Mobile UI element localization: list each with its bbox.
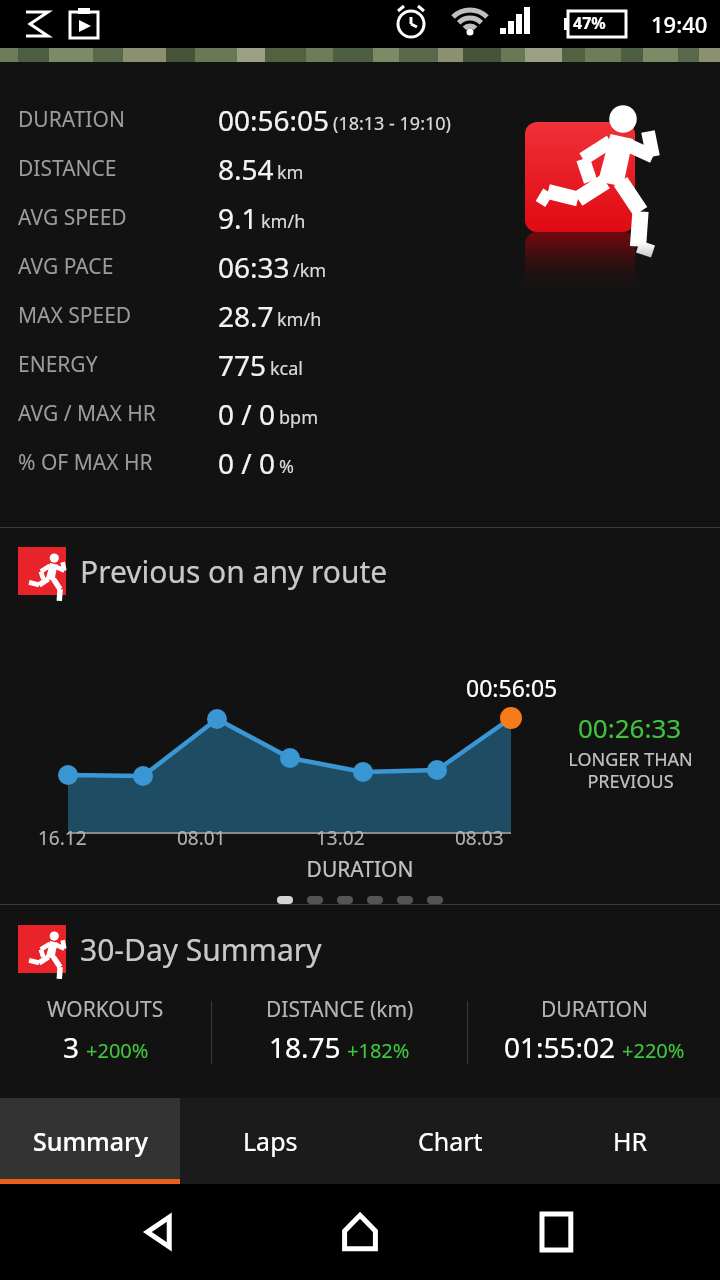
staticText: 08.01 [177,825,226,851]
button[interactable]: DURATION [468,995,720,1070]
staticText: 00:56:05 [466,672,558,703]
staticText: 9.1 [218,199,258,237]
button[interactable] [337,896,353,904]
staticText: bpm [279,405,318,430]
staticText: AVG SPEED [18,203,127,232]
staticText: DISTANCE [18,154,117,183]
staticText: WORKOUTS [47,995,164,1024]
staticText: DISTANCE (km) [266,995,414,1024]
button[interactable]: HR [540,1098,720,1184]
staticText: DURATION [541,995,648,1024]
staticText: Previous on any route [80,551,388,592]
staticText: 00:26:33 [578,710,682,745]
staticText: 3 [63,1028,80,1066]
staticText: 19:40 [651,9,708,39]
staticText: Laps [243,1124,298,1158]
staticText: 01:55:02 [504,1028,616,1066]
staticText: 00:56:05 [218,101,330,139]
staticText: km/h [261,209,306,234]
staticText: kcal [270,356,303,381]
staticText: 47% [573,12,606,34]
staticText: DURATION [0,855,720,884]
button[interactable]: Chart [360,1098,540,1184]
staticText: 0 / 0 [218,395,276,433]
staticText: 16.12 [38,825,87,851]
staticText: HR [613,1124,648,1158]
staticText: 13.02 [316,825,365,851]
staticText: +200% [86,1037,149,1064]
staticText: Summary [33,1124,148,1158]
staticText: % OF MAX HR [18,448,153,477]
staticText: +220% [622,1037,685,1064]
staticText: 0 / 0 [218,444,276,482]
staticText: ENERGY [18,350,98,379]
staticText: km/h [277,307,322,332]
staticText: /km [293,258,327,283]
button[interactable] [397,896,413,904]
button[interactable]: Back [120,1192,200,1272]
button[interactable]: WORKOUTS [0,995,211,1070]
button[interactable]: Home [320,1192,400,1272]
staticText: Chart [418,1124,483,1158]
button[interactable]: DISTANCE (km) [212,995,467,1070]
staticText: 775 [218,346,267,384]
button[interactable] [427,896,443,904]
staticText: MAX SPEED [18,301,132,330]
staticText: % [279,454,294,479]
staticText: 18.75 [269,1028,341,1066]
staticText: +182% [347,1037,410,1064]
staticText: 8.54 [218,150,274,188]
staticText: (18:13 - 19:10) [333,111,451,136]
staticText: AVG PACE [18,252,114,281]
staticText: 06:33 [218,248,290,286]
staticText: AVG / MAX HR [18,399,156,428]
button[interactable]: Laps [180,1098,360,1184]
button[interactable] [367,896,383,904]
staticText: 30-Day Summary [80,929,322,970]
staticText: 28.7 [218,297,274,335]
staticText: DURATION [18,105,125,134]
button[interactable] [277,896,293,904]
button[interactable]: Recent apps [520,1192,600,1272]
button[interactable] [307,896,323,904]
staticText: 08.03 [455,825,504,851]
staticText: km [277,160,304,185]
button[interactable]: Summary [0,1098,180,1184]
staticText: LONGER THAN PREVIOUS [568,747,693,794]
